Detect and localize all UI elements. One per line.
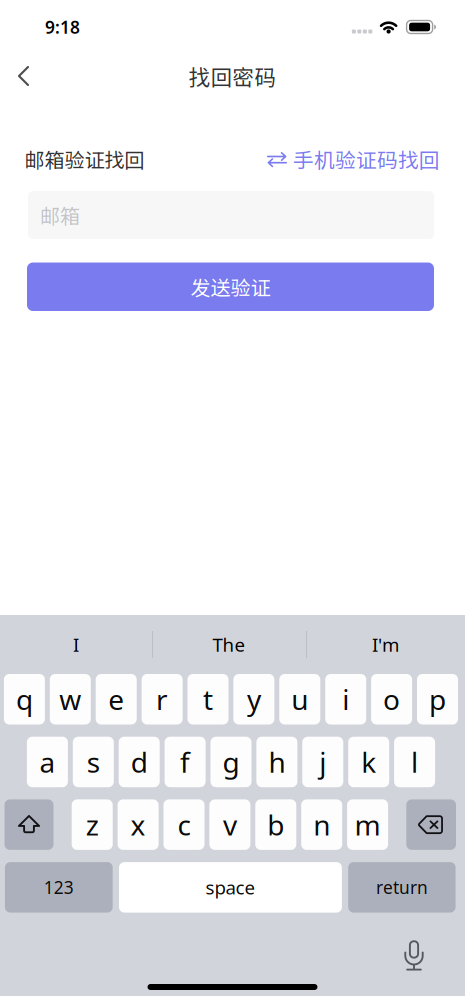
button[interactable]: Back [0, 54, 44, 98]
button[interactable]: v [209, 799, 250, 850]
button[interactable]: i [325, 674, 366, 724]
staticText: I [73, 632, 79, 657]
staticText: a [39, 743, 55, 781]
button[interactable]: j [302, 737, 343, 787]
staticText: I'm [372, 632, 399, 657]
staticText: return [376, 876, 428, 899]
staticText: y [247, 681, 261, 718]
button[interactable]: The [152, 624, 306, 664]
staticText: m [355, 806, 381, 843]
button[interactable]: l [394, 737, 435, 787]
staticText: 邮箱 [40, 200, 80, 229]
button[interactable]: o [371, 674, 412, 724]
button[interactable]: Shift [4, 799, 53, 850]
staticText: z [86, 806, 99, 843]
staticText: u [291, 681, 308, 718]
staticText: e [108, 681, 124, 718]
button[interactable]: x [118, 799, 159, 850]
button[interactable]: k [348, 737, 389, 787]
button[interactable]: I'm [306, 624, 465, 664]
button[interactable]: e [96, 674, 137, 724]
staticText: s [87, 743, 100, 781]
staticText: h [268, 743, 285, 781]
button[interactable]: d [119, 737, 160, 787]
staticText: j [319, 743, 326, 781]
button[interactable]: Delete [406, 799, 456, 850]
staticText: 9:18 [45, 15, 80, 38]
staticText: w [59, 681, 81, 718]
staticText: x [131, 806, 146, 843]
staticText: k [361, 743, 376, 781]
button[interactable]: h [256, 737, 297, 787]
staticText: n [313, 806, 330, 843]
button[interactable]: 123 [5, 862, 113, 913]
staticText: b [267, 806, 284, 843]
staticText: v [223, 806, 237, 843]
button[interactable]: m [347, 799, 388, 850]
staticText: l [411, 743, 418, 781]
button[interactable]: u [279, 674, 320, 724]
staticText: t [203, 681, 213, 718]
button[interactable]: q [4, 674, 45, 724]
button[interactable]: r [142, 674, 183, 724]
button[interactable]: w [50, 674, 91, 724]
button[interactable]: return [348, 862, 456, 913]
button[interactable]: 手机验证码找回 [267, 144, 440, 174]
button[interactable]: space [119, 862, 342, 913]
staticText: The [212, 632, 245, 657]
staticText: d [131, 743, 148, 781]
button[interactable]: n [301, 799, 342, 850]
button[interactable]: f [165, 737, 206, 787]
button[interactable]: t [187, 674, 228, 724]
staticText: 邮箱验证找回 [24, 144, 144, 173]
button[interactable]: s [73, 737, 114, 787]
button[interactable]: 发送验证 [0, 262, 465, 311]
staticText: f [180, 743, 190, 781]
button[interactable]: a [27, 737, 68, 787]
staticText: space [205, 875, 255, 900]
button[interactable]: b [255, 799, 296, 850]
staticText: q [16, 681, 33, 718]
staticText: r [156, 681, 168, 718]
staticText: i [342, 681, 349, 718]
button[interactable]: g [210, 737, 251, 787]
staticText: 找回密码 [188, 60, 276, 92]
staticText: 手机验证码找回 [293, 144, 440, 174]
button[interactable]: Dictation [394, 938, 434, 976]
staticText: 123 [44, 876, 74, 899]
button[interactable]: z [72, 799, 113, 850]
staticText: o [383, 681, 400, 718]
staticText: 发送验证 [190, 272, 270, 301]
button[interactable]: p [417, 674, 458, 724]
button[interactable]: c [163, 799, 204, 850]
button[interactable]: I [0, 624, 152, 664]
staticText: c [177, 806, 190, 843]
staticText: g [222, 743, 239, 781]
staticText: p [429, 681, 446, 718]
button[interactable]: y [233, 674, 274, 724]
